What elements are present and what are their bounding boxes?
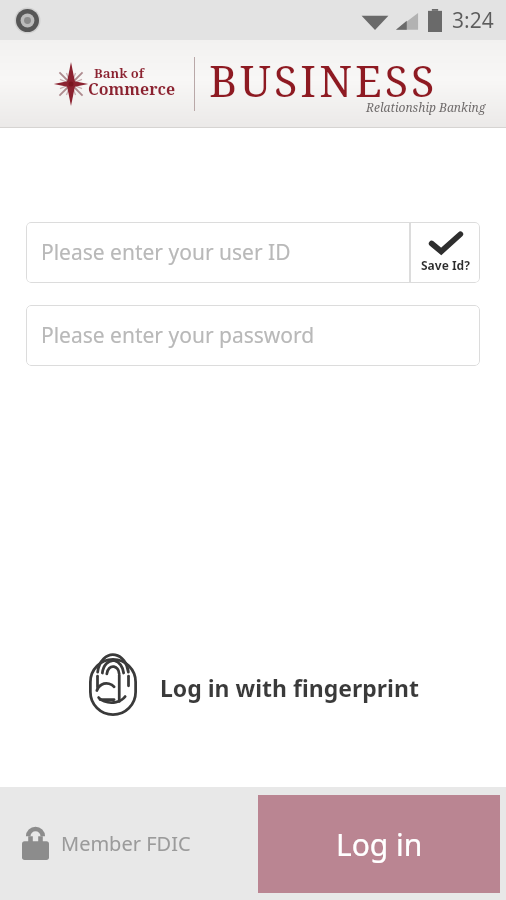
staticText: Log in	[336, 824, 423, 865]
staticText: Relationship Banking	[366, 99, 486, 115]
button[interactable]: Please enter your user ID	[26, 222, 410, 283]
staticText: Please enter your password	[41, 321, 315, 350]
button[interactable]: Log in	[258, 795, 500, 893]
staticText: BUSINESS	[209, 51, 438, 110]
staticText: Log in with fingerprint	[160, 672, 419, 703]
staticText: Please enter your user ID	[41, 238, 291, 267]
staticText: Member FDIC	[61, 830, 191, 857]
button[interactable]: Member FDIC	[22, 827, 191, 860]
staticText: Bank of	[94, 64, 145, 82]
button[interactable]: Log in with fingerprint	[0, 651, 506, 723]
staticText: Save Id?	[421, 257, 470, 273]
button[interactable]: Save Id	[410, 222, 480, 283]
staticText: Commerce	[88, 78, 176, 100]
staticText: 3:24	[452, 6, 494, 35]
button[interactable]: Please enter your password	[26, 305, 480, 366]
